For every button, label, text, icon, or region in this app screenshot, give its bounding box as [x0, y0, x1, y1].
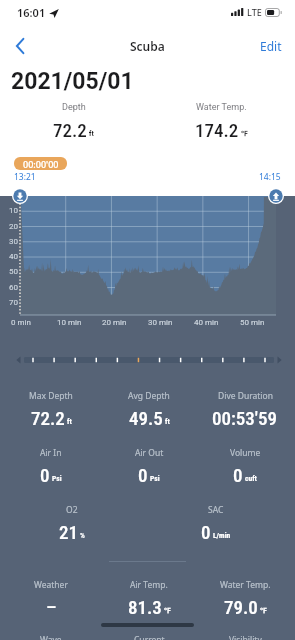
staticText: SAC [208, 504, 224, 516]
staticText: 40 min [194, 318, 219, 327]
staticText: Dive Duration [218, 390, 273, 402]
staticText: 20 [0, 222, 18, 231]
staticText: Volume [230, 447, 261, 459]
staticText: Scuba [130, 38, 165, 54]
staticText: 50 [0, 267, 18, 276]
staticText: 20 min [102, 318, 127, 327]
staticText: 10 [0, 206, 18, 215]
staticText: Depth [62, 102, 86, 113]
staticText: ℉ [260, 605, 267, 615]
staticText: Psi [52, 474, 62, 483]
staticText: 21 [59, 521, 78, 543]
staticText: Psi [150, 474, 160, 483]
staticText: Weather [34, 579, 68, 591]
button[interactable]: Dive Duration [199, 390, 291, 429]
staticText: Air In [40, 447, 62, 459]
staticText: 0 [201, 521, 211, 543]
staticText: – [46, 596, 57, 618]
staticText: 40 [0, 252, 18, 261]
staticText: 70 [0, 298, 18, 307]
button[interactable]: Ascent end [268, 188, 284, 204]
staticText: 0 [233, 464, 243, 486]
staticText: 174.2 [195, 119, 239, 141]
button[interactable]: Descent start [12, 188, 28, 204]
staticText: 2021/05/01 [11, 68, 134, 95]
button[interactable]: Water Temp. [199, 579, 291, 618]
staticText: ft [67, 417, 72, 426]
staticText: O2 [66, 504, 78, 516]
staticText: ℉ [164, 605, 171, 615]
staticText: 0 [138, 464, 148, 486]
staticText: Water Temp. [196, 102, 247, 113]
button[interactable]: Volume [199, 447, 291, 486]
staticText: Air Out [135, 447, 164, 459]
staticText: 0 [40, 464, 50, 486]
button[interactable]: Back [0, 33, 40, 59]
staticText: Max Depth [29, 390, 73, 402]
staticText: 72.2 [53, 119, 87, 141]
staticText: 14:15 [259, 171, 281, 183]
staticText: 16:01 [17, 5, 46, 20]
staticText: 60 [0, 283, 18, 292]
staticText: 81.3 [128, 596, 162, 618]
staticText: 79.0 [224, 596, 258, 618]
staticText: ft [89, 129, 94, 138]
staticText: Water Temp. [220, 579, 271, 591]
staticText: 13:21 [14, 171, 36, 183]
button[interactable]: Edit [260, 33, 282, 59]
staticText: Avg Depth [128, 390, 170, 402]
staticText: Visibility [229, 634, 262, 640]
button[interactable]: Avg Depth [103, 390, 195, 429]
button[interactable]: SAC [170, 504, 262, 543]
staticText: LTE [247, 6, 262, 18]
staticText: ℉ [241, 128, 248, 138]
staticText: L/min [213, 531, 231, 540]
button[interactable]: Air Temp. [103, 579, 195, 618]
staticText: 50 min [240, 318, 265, 327]
staticText: 30 [0, 237, 18, 246]
button[interactable]: O2 [26, 504, 118, 543]
staticText: 0 min [11, 318, 31, 327]
staticText: 10 min [57, 318, 82, 327]
staticText: Air Temp. [130, 579, 168, 591]
staticText: % [80, 531, 85, 540]
button[interactable]: Air Out [103, 447, 195, 486]
staticText: Wave [40, 634, 62, 640]
button[interactable]: Weather [5, 579, 97, 618]
staticText: Edit [260, 38, 282, 54]
staticText: Current [134, 634, 165, 640]
staticText: ft [165, 417, 170, 426]
staticText: cuft [245, 474, 257, 483]
staticText: 72.2 [31, 407, 65, 429]
button[interactable]: Dive timeline scrubber [0, 350, 295, 370]
staticText: 00:53'59 [212, 407, 278, 429]
staticText: 00:00'00 [23, 158, 59, 170]
staticText: 30 min [148, 318, 173, 327]
staticText: 49.5 [129, 407, 163, 429]
button[interactable]: Air In [5, 447, 97, 486]
button[interactable]: Max Depth [5, 390, 97, 429]
